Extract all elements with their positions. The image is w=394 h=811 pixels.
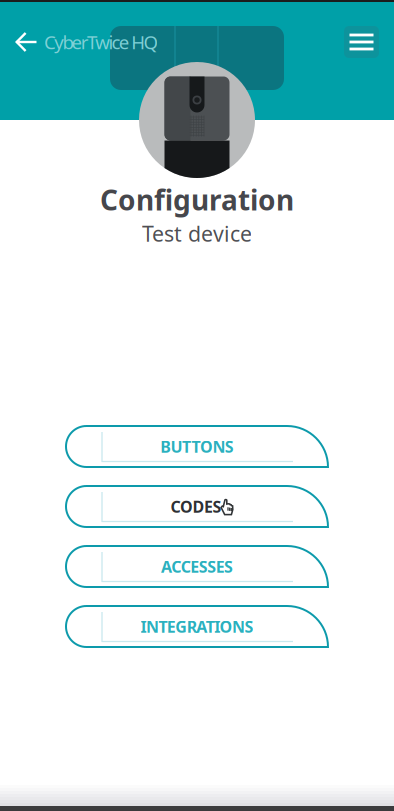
button[interactable]: INTEGRATIONS (66, 606, 328, 647)
staticText: BUTTONS (160, 436, 234, 457)
button[interactable]: Back (15, 31, 38, 52)
button[interactable]: CODES (66, 486, 328, 527)
staticText: INTEGRATIONS (140, 616, 253, 637)
staticText: CODES (171, 496, 221, 517)
button[interactable]: ACCESSES (66, 546, 328, 587)
staticText: ACCESSES (161, 556, 233, 577)
staticText: Configuration (100, 181, 294, 218)
staticText: CyberTwice HQ (44, 30, 158, 54)
staticText: Test device (142, 219, 252, 247)
button[interactable]: Menu (344, 26, 379, 58)
button[interactable]: BUTTONS (66, 426, 328, 467)
